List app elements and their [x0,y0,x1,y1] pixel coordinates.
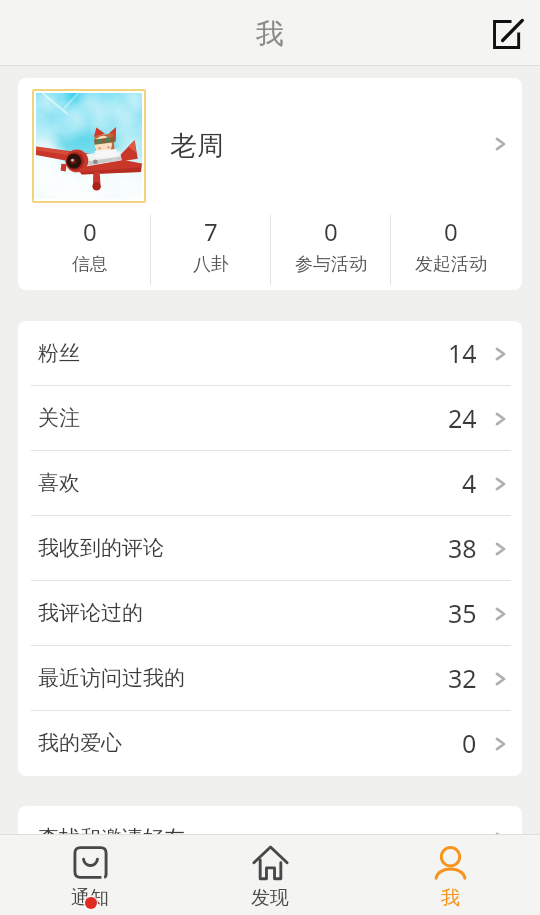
staticText: 通知 [71,886,109,910]
staticText: 喜欢 [38,470,80,496]
staticText: 24 [448,401,477,435]
button[interactable]: Edit profile [484,11,528,55]
staticText: 关注 [38,405,80,431]
button[interactable]: 查找和邀请好友 [18,806,522,871]
staticText: 信息 [72,253,108,276]
staticText: 我评论过的 [38,600,143,626]
button[interactable]: 通知 [0,834,180,915]
staticText: 14 [448,336,477,370]
staticText: 最近访问过我的 [38,665,185,691]
button[interactable]: 发现 [180,834,360,915]
button[interactable]: 最近访问过我的 [18,646,522,711]
button[interactable]: 我 [360,834,540,915]
staticText: 7 [204,215,218,248]
button[interactable]: 0 [271,209,390,290]
button[interactable]: 0 [391,209,510,290]
staticText: 八卦 [193,253,229,276]
staticText: 查找和邀请好友 [38,825,185,851]
button[interactable]: 我收到的评论 [18,516,522,581]
staticText: 我 [256,16,284,51]
button[interactable]: 我评论过的 [18,581,522,646]
button[interactable]: 喜欢 [18,451,522,516]
staticText: 我 [441,886,460,910]
staticText: 0 [444,215,458,248]
button[interactable]: 我的爱心 [18,711,522,776]
staticText: 我的爱心 [38,730,122,756]
staticText: 参与活动 [295,253,367,276]
staticText: 32 [448,661,477,695]
staticText: 38 [448,531,477,565]
button[interactable]: 0 [30,209,150,290]
staticText: 35 [448,596,477,630]
button[interactable]: 粉丝 [18,321,522,386]
staticText: 发起活动 [415,253,487,276]
button[interactable]: 关注 [18,386,522,451]
staticText: 0 [83,215,97,248]
staticText: 发现 [251,886,289,910]
staticText: 我收到的评论 [38,535,164,561]
staticText: 0 [462,726,477,760]
button[interactable]: 老周 [18,78,522,209]
button[interactable]: 7 [151,209,270,290]
staticText: 4 [462,466,477,500]
staticText: 粉丝 [38,340,80,366]
staticText: 老周 [170,129,224,163]
staticText: 0 [324,215,338,248]
